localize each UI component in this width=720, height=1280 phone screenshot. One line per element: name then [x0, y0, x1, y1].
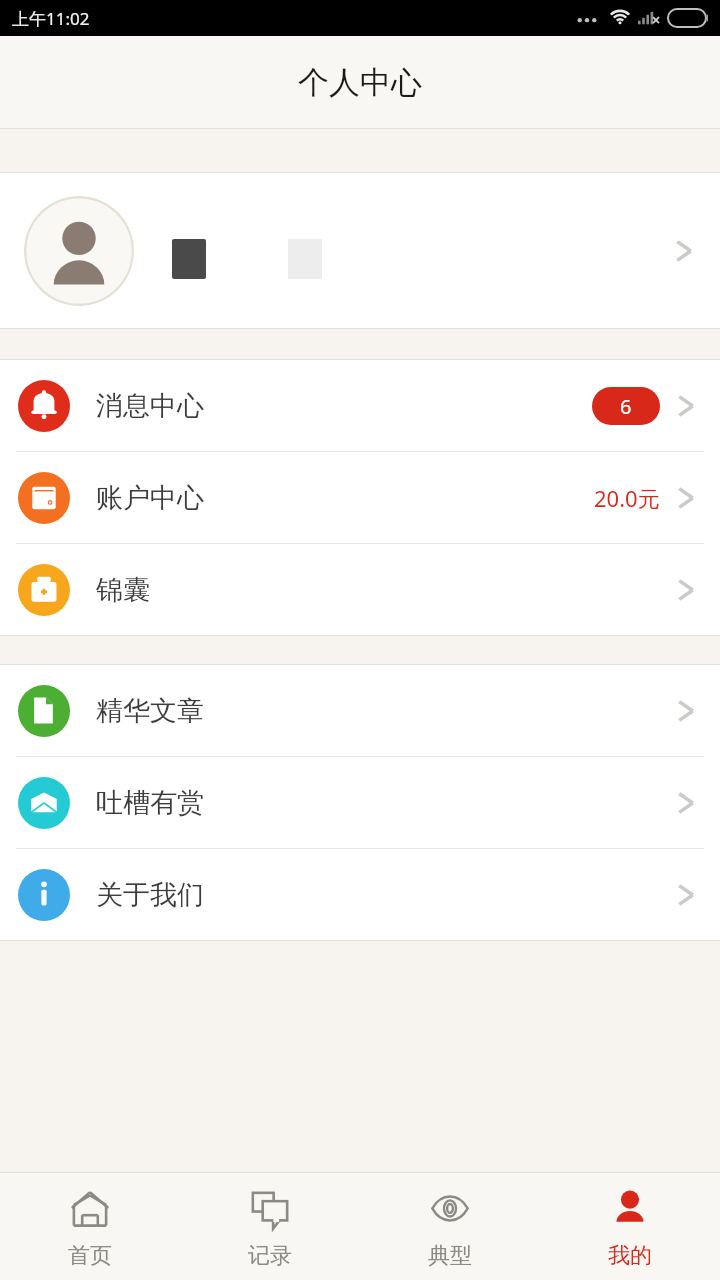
staticText: 锦囊	[96, 573, 150, 607]
button[interactable]: 锦囊	[0, 544, 720, 635]
button[interactable]: 首页	[0, 1173, 180, 1280]
staticText: 关于我们	[96, 878, 204, 912]
button[interactable]: 精华文章	[0, 665, 720, 756]
other: 打开	[674, 785, 698, 821]
other: 打开	[674, 572, 698, 608]
other: 我的	[604, 1184, 656, 1236]
button[interactable]: 消息中心	[0, 360, 720, 451]
staticText: 20.0元	[594, 483, 660, 513]
staticText: 精华文章	[96, 694, 204, 728]
staticText: 上午11:02	[12, 7, 90, 30]
button[interactable]: 我的	[540, 1173, 720, 1280]
button[interactable]: 打开	[0, 173, 720, 328]
button[interactable]: 记录	[180, 1173, 360, 1280]
other: 打开	[674, 480, 698, 516]
other: 打开	[674, 693, 698, 729]
other: 打开	[674, 877, 698, 913]
staticText: 我的	[608, 1242, 652, 1270]
staticText: 个人中心	[298, 63, 422, 102]
staticText: 首页	[68, 1242, 112, 1270]
other: 打开	[674, 388, 698, 424]
staticText: 吐槽有赏	[96, 786, 204, 820]
button[interactable]: 关于我们	[0, 849, 720, 940]
button[interactable]: 吐槽有赏	[0, 757, 720, 848]
button[interactable]: 典型	[360, 1173, 540, 1280]
staticText: 典型	[428, 1242, 472, 1270]
button[interactable]: 账户中心	[0, 452, 720, 543]
staticText: 消息中心	[96, 389, 204, 423]
staticText: 6	[620, 393, 632, 420]
staticText: 账户中心	[96, 481, 204, 515]
staticText: 记录	[248, 1242, 292, 1270]
other: 打开	[672, 233, 696, 269]
